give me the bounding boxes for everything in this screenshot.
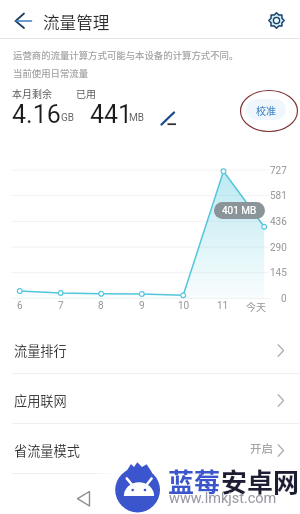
- staticText: 已用: [76, 86, 96, 100]
- button[interactable]: Edit data plan: [158, 108, 180, 128]
- staticText: 7: [58, 300, 64, 312]
- staticText: 581: [270, 190, 287, 202]
- button[interactable]: Back: [8, 7, 36, 33]
- staticText: 290: [270, 242, 287, 254]
- staticText: 401 MB: [222, 205, 257, 217]
- staticText: 蓝莓: [168, 462, 221, 500]
- staticText: GB: [61, 112, 75, 124]
- staticText: 应用联网: [14, 391, 67, 410]
- staticText: 0: [281, 293, 287, 305]
- staticText: www.lmkjst.com: [169, 490, 277, 507]
- staticText: 今天: [246, 299, 266, 313]
- staticText: 727: [270, 165, 287, 177]
- staticText: 本月剩余: [12, 86, 52, 100]
- staticText: MB: [129, 112, 144, 124]
- button[interactable]: 省流量模式: [0, 425, 300, 473]
- staticText: 9: [139, 300, 145, 312]
- staticText: 流量管理: [43, 10, 110, 34]
- staticText: 省流量模式: [14, 441, 80, 460]
- staticText: 安卓网: [221, 462, 300, 500]
- staticText: 441: [90, 100, 133, 129]
- staticText: 11: [217, 300, 229, 312]
- button[interactable]: 校准: [246, 99, 286, 120]
- staticText: 6: [17, 300, 23, 312]
- staticText: 流量排行: [14, 341, 67, 360]
- staticText: 当前使用日常流量: [13, 66, 89, 80]
- staticText: 145: [270, 267, 287, 279]
- staticText: 开启: [250, 440, 273, 457]
- button[interactable]: Back: [72, 487, 96, 511]
- staticText: 4.16: [12, 100, 61, 129]
- staticText: 运营商的流量计算方式可能与本设备的计算方式不同。: [13, 48, 239, 62]
- staticText: 校准: [256, 103, 276, 117]
- button[interactable]: 应用联网: [0, 375, 300, 423]
- button[interactable]: 流量排行: [0, 325, 300, 373]
- button[interactable]: Settings: [266, 10, 287, 31]
- staticText: 8: [98, 300, 104, 312]
- staticText: 10: [178, 300, 190, 312]
- staticText: 436: [270, 216, 287, 228]
